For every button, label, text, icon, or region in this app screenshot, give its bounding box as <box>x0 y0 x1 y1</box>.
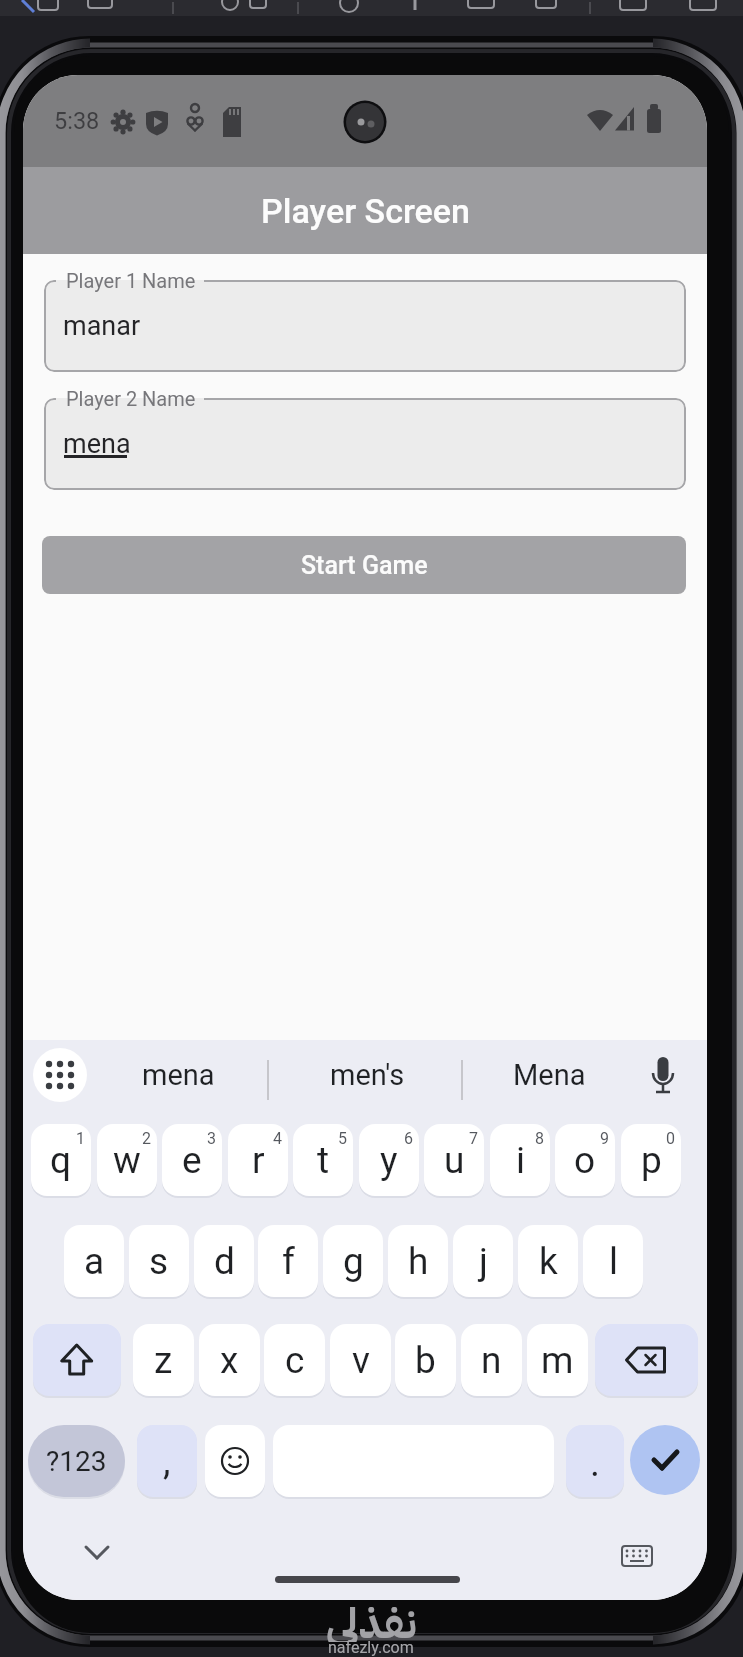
button[interactable] <box>395 1324 456 1396</box>
staticText: s <box>149 1240 169 1283</box>
button[interactable] <box>323 1225 383 1297</box>
button[interactable] <box>137 1425 197 1497</box>
button[interactable] <box>28 1425 125 1497</box>
button[interactable] <box>518 1225 578 1297</box>
button[interactable] <box>133 1324 194 1396</box>
staticText: f <box>282 1240 295 1283</box>
button[interactable] <box>461 1324 522 1396</box>
button[interactable] <box>264 1324 325 1396</box>
button[interactable]: mena <box>88 1055 268 1095</box>
staticText: nafezly.com <box>328 1638 414 1656</box>
staticText: e <box>182 1139 202 1182</box>
staticText: v <box>352 1339 370 1382</box>
button[interactable]: men's <box>277 1055 457 1095</box>
staticText: h <box>408 1240 429 1283</box>
staticText: w <box>113 1139 141 1182</box>
button[interactable] <box>44 280 686 372</box>
button[interactable] <box>33 1324 121 1396</box>
staticText: o <box>574 1139 596 1182</box>
staticText: men's <box>330 1058 405 1092</box>
staticText: 6 <box>404 1129 413 1148</box>
staticText: 5 <box>338 1129 347 1148</box>
staticText: j <box>479 1240 488 1283</box>
button[interactable] <box>595 1324 698 1396</box>
staticText: u <box>444 1139 465 1182</box>
button[interactable] <box>388 1225 448 1297</box>
button[interactable] <box>258 1225 318 1297</box>
button[interactable] <box>44 398 686 490</box>
staticText: l <box>609 1240 618 1283</box>
staticText: x <box>220 1339 239 1382</box>
staticText: i <box>516 1139 525 1182</box>
button[interactable] <box>566 1425 624 1497</box>
button[interactable] <box>64 1225 124 1297</box>
staticText: mena <box>63 428 131 460</box>
staticText: ?123 <box>46 1445 107 1478</box>
button[interactable] <box>97 1124 157 1196</box>
button[interactable] <box>33 1048 87 1102</box>
staticText: c <box>285 1339 305 1382</box>
staticText: r <box>252 1139 265 1182</box>
button[interactable] <box>583 1225 643 1297</box>
button[interactable] <box>424 1124 484 1196</box>
button[interactable] <box>129 1225 189 1297</box>
staticText: n <box>481 1339 502 1382</box>
staticText: p <box>641 1139 662 1182</box>
staticText: 1 <box>76 1129 85 1148</box>
button[interactable] <box>31 1124 91 1196</box>
button[interactable] <box>527 1324 588 1396</box>
button[interactable] <box>621 1124 681 1196</box>
staticText: k <box>539 1240 558 1283</box>
button[interactable] <box>619 1535 663 1575</box>
button[interactable] <box>199 1324 260 1396</box>
staticText: 5:38 <box>54 107 100 135</box>
staticText: Player 2 Name <box>66 387 196 410</box>
staticText: Mena <box>513 1058 586 1092</box>
staticText: . <box>590 1441 601 1486</box>
button[interactable] <box>453 1225 513 1297</box>
staticText: y <box>380 1139 398 1182</box>
button[interactable] <box>42 536 686 594</box>
button[interactable] <box>162 1124 222 1196</box>
button[interactable] <box>490 1124 550 1196</box>
button[interactable] <box>205 1425 265 1497</box>
staticText: manar <box>63 310 141 342</box>
staticText: q <box>50 1139 72 1182</box>
staticText: a <box>84 1240 105 1283</box>
staticText: 9 <box>600 1129 609 1148</box>
staticText: Start Game <box>301 551 428 580</box>
staticText: 3 <box>207 1129 216 1148</box>
staticText: g <box>343 1240 364 1283</box>
staticText: 0 <box>666 1129 675 1148</box>
staticText: mena <box>142 1058 215 1092</box>
button[interactable] <box>228 1124 288 1196</box>
button[interactable] <box>194 1225 254 1297</box>
button[interactable] <box>555 1124 615 1196</box>
staticText: d <box>214 1240 235 1283</box>
button[interactable] <box>293 1124 353 1196</box>
staticText: Player 1 Name <box>66 269 196 292</box>
staticText: 4 <box>273 1129 282 1148</box>
staticText: t <box>317 1139 330 1182</box>
staticText: b <box>415 1339 436 1382</box>
staticText: 8 <box>535 1129 544 1148</box>
staticText: 7 <box>469 1129 478 1148</box>
button[interactable] <box>359 1124 419 1196</box>
staticText: Player Screen <box>261 191 470 231</box>
staticText: نفذلي <box>326 1592 417 1642</box>
button[interactable]: Mena <box>459 1055 639 1095</box>
staticText: m <box>541 1339 574 1382</box>
button[interactable] <box>330 1324 391 1396</box>
staticText: 2 <box>142 1129 151 1148</box>
staticText: z <box>154 1339 173 1382</box>
button[interactable] <box>630 1425 700 1495</box>
button[interactable] <box>83 1535 127 1575</box>
staticText: , <box>163 1439 171 1484</box>
